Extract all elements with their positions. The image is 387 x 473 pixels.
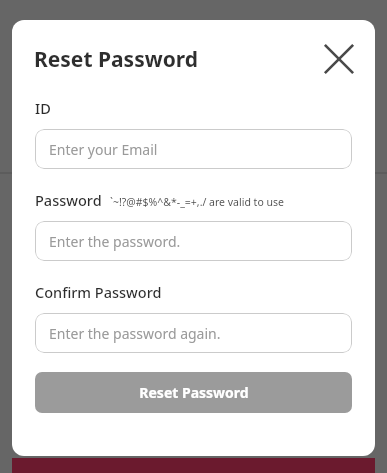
button[interactable]: Close <box>317 37 361 81</box>
staticText: `~!?@#$%^&*-_=+,./ are valid to use <box>110 195 284 209</box>
button[interactable]: Enter the password. <box>35 221 352 261</box>
staticText: Enter your Email <box>49 140 158 159</box>
staticText: Password <box>35 190 102 210</box>
button[interactable]: Enter the password again. <box>35 313 352 353</box>
staticText: Enter the password again. <box>49 324 221 343</box>
staticText: ID <box>35 98 51 118</box>
staticText: Reset Password <box>139 383 249 402</box>
staticText: Reset Password <box>34 45 199 74</box>
button[interactable]: Reset Password <box>35 372 352 413</box>
staticText: Confirm Password <box>35 282 162 302</box>
staticText: Enter the password. <box>49 232 181 251</box>
button[interactable]: Enter your Email <box>35 129 352 169</box>
